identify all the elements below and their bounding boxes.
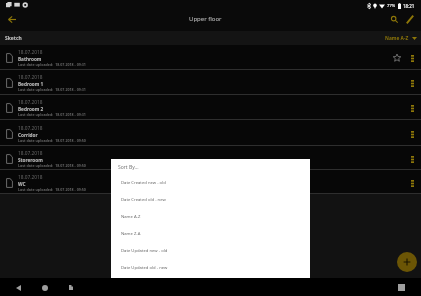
staticText: WC	[18, 181, 26, 187]
button[interactable]: Name A-Z	[111, 208, 310, 225]
staticText: Name A-Z	[121, 214, 141, 220]
button[interactable]: Add	[397, 252, 417, 272]
button[interactable]: 18.07.2018	[0, 70, 421, 94]
button[interactable]: Date Created old - new	[111, 191, 310, 208]
button[interactable]: Screenshot	[396, 282, 407, 293]
button[interactable]: More options	[406, 101, 418, 113]
button[interactable]: Favorite	[391, 51, 403, 63]
button[interactable]: Recents	[65, 282, 76, 293]
staticText: Date Created new - old	[121, 180, 166, 186]
staticText: Sketch	[5, 35, 22, 42]
button[interactable]: More options	[406, 152, 418, 164]
staticText: 77%	[387, 3, 396, 9]
button[interactable]: More options	[406, 176, 418, 188]
button[interactable]: Date Updated new - old	[111, 242, 310, 259]
button[interactable]: 18.07.2018	[0, 45, 421, 69]
button[interactable]: 18.07.2018	[0, 95, 421, 119]
staticText: Corridor	[18, 132, 38, 138]
staticText: Name A-Z	[385, 35, 409, 42]
staticText: Bathroom	[18, 56, 42, 62]
staticText: Last date uploaded: 18.07.2018 - 09:50	[18, 163, 86, 168]
button[interactable]: Edit	[403, 12, 417, 26]
button[interactable]: More options	[406, 76, 418, 88]
staticText: Storeroom	[18, 157, 43, 163]
staticText: 18.07.2018	[18, 150, 43, 157]
staticText: Last date uploaded: 18.07.2018 - 09:31	[18, 87, 86, 92]
staticText: Bedroom 1	[18, 81, 44, 87]
staticText: 18.07.2018	[18, 174, 43, 181]
staticText: Last date uploaded: 18.07.2018 - 09:50	[18, 138, 86, 143]
button[interactable]: Back	[5, 12, 19, 26]
staticText: Bedroom 2	[18, 106, 44, 112]
button[interactable]: More options	[406, 127, 418, 139]
button[interactable]: 18.07.2018	[0, 120, 421, 145]
button[interactable]: Name A-Z	[385, 35, 417, 42]
staticText: Date Created old - new	[121, 197, 166, 203]
staticText: 18:21	[403, 3, 415, 9]
staticText: Date Updated new - old	[121, 248, 168, 254]
staticText: 18.07.2018	[18, 99, 43, 106]
staticText: Last date uploaded: 18.07.2018 - 09:50	[18, 187, 86, 192]
staticText: Last date uploaded: 18.07.2018 - 09:31	[18, 112, 86, 117]
button[interactable]: Search	[387, 12, 401, 26]
button[interactable]: More options	[406, 51, 418, 63]
button[interactable]: Date Updated old - new	[111, 259, 310, 276]
button[interactable]: Home	[39, 282, 50, 293]
staticText: Upper floor	[189, 15, 222, 23]
button[interactable]: 18.07.2018	[0, 146, 421, 169]
staticText: Sort By...	[118, 164, 139, 171]
staticText: 18.07.2018	[18, 49, 43, 56]
staticText: 18.07.2018	[18, 125, 43, 132]
staticText: Name Z-A	[121, 231, 141, 237]
staticText: 18.07.2018	[18, 74, 43, 81]
button[interactable]: Back	[13, 282, 24, 293]
button[interactable]: Date Created new - old	[111, 174, 310, 191]
button[interactable]: 18.07.2018	[0, 170, 421, 193]
staticText: Date Updated old - new	[121, 265, 168, 271]
staticText: Last date uploaded: 18.07.2018 - 09:31	[18, 62, 86, 67]
button[interactable]: Name Z-A	[111, 225, 310, 242]
